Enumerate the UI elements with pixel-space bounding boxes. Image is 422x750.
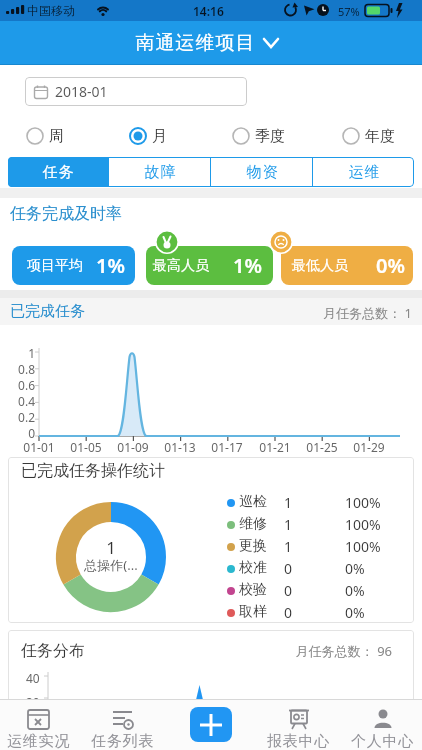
staticText: 1% [96, 252, 125, 279]
staticText: 维修 [239, 515, 267, 533]
staticText: 任务分布 [21, 641, 85, 661]
staticText: 0.8 [8, 361, 35, 377]
staticText: 0% [345, 559, 365, 578]
staticText: 01-17 [208, 439, 246, 455]
staticText: 0% [345, 581, 365, 600]
staticText: 月任务总数： 96 [280, 642, 392, 660]
staticText: 月 [152, 127, 167, 146]
staticText: 0.2 [8, 409, 35, 425]
staticText: 已完成任务操作统计 [21, 461, 165, 481]
button[interactable]: 故障 [109, 157, 210, 187]
staticText: 已完成任务 [10, 302, 85, 321]
staticText: 01-25 [303, 439, 341, 455]
staticText: 0 [8, 425, 35, 441]
staticText: 周 [49, 127, 64, 146]
staticText: 运维实况 [7, 732, 71, 750]
staticText: 0% [376, 252, 405, 279]
staticText: 1% [233, 252, 262, 279]
staticText: 南通运维项目 [135, 31, 255, 55]
staticText: 20 [26, 694, 40, 710]
staticText: 01-01 [20, 439, 58, 455]
button[interactable] [190, 707, 232, 742]
staticText: 14:16 [193, 3, 224, 19]
staticText: 100% [345, 493, 381, 512]
staticText: 1 [284, 537, 293, 556]
staticText: 取样 [239, 603, 267, 621]
staticText: 01-21 [256, 439, 294, 455]
staticText: 2018-01 [55, 82, 108, 101]
button[interactable]: 个人中心 [343, 700, 422, 750]
staticText: 更换 [239, 537, 267, 555]
staticText: 0% [345, 603, 365, 622]
staticText: 0 [284, 581, 293, 600]
staticText: 100% [345, 515, 381, 534]
staticText: 校验 [239, 581, 267, 599]
staticText: 任务 [42, 163, 74, 182]
button[interactable]: 物资 [211, 157, 312, 187]
staticText: 项目平均 [27, 257, 83, 275]
staticText: 0 [284, 559, 293, 578]
staticText: 年度 [365, 127, 395, 146]
staticText: 最低人员 [292, 257, 348, 275]
staticText: 月任务总数： 1 [300, 304, 412, 322]
staticText: 0.6 [8, 377, 35, 393]
staticText: 0.4 [8, 393, 35, 409]
staticText: 0 [284, 603, 293, 622]
staticText: 01-09 [114, 439, 152, 455]
staticText: 01-05 [67, 439, 105, 455]
button[interactable]: 周 [26, 122, 64, 150]
staticText: 01-29 [350, 439, 388, 455]
staticText: 校准 [239, 559, 267, 577]
staticText: 1 [81, 536, 141, 559]
staticText: 故障 [144, 163, 176, 182]
staticText: 物资 [246, 163, 278, 182]
button[interactable]: 报表中心 [259, 700, 339, 750]
button[interactable]: 季度 [232, 122, 285, 150]
staticText: 个人中心 [351, 732, 415, 750]
staticText: 最高人员 [153, 257, 209, 275]
button[interactable]: 项目平均 [12, 246, 135, 285]
staticText: 总操作(... [76, 556, 146, 574]
staticText: 任务完成及时率 [10, 204, 122, 224]
staticText: 1 [284, 493, 293, 512]
staticText: 报表中心 [267, 732, 331, 750]
button[interactable]: 南通运维项目 [135, 31, 279, 55]
button[interactable]: 最高人员 [146, 246, 273, 285]
button[interactable]: 年度 [342, 122, 395, 150]
button[interactable]: 最低人员 [281, 246, 413, 285]
button[interactable]: 月 [129, 122, 167, 150]
staticText: 1 [284, 515, 293, 534]
staticText: 57% [338, 4, 360, 19]
staticText: 中国移动 [27, 3, 75, 18]
button[interactable]: 2018-01 [25, 77, 247, 106]
staticText: 40 [26, 670, 40, 686]
button[interactable]: 运维实况 [0, 700, 79, 750]
button[interactable]: 运维 [313, 157, 414, 187]
staticText: 1 [8, 345, 35, 361]
staticText: 季度 [255, 127, 285, 146]
staticText: 01-13 [161, 439, 199, 455]
button[interactable]: 任务列表 [83, 700, 163, 750]
staticText: 巡检 [239, 493, 267, 511]
staticText: 100% [345, 537, 381, 556]
button[interactable]: 任务 [8, 157, 108, 187]
staticText: 任务列表 [91, 732, 155, 750]
staticText: 运维 [348, 163, 380, 182]
